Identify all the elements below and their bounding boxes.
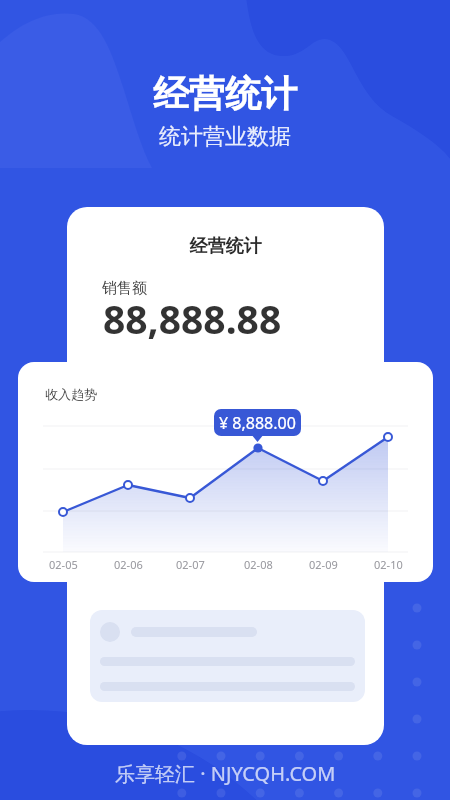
staticText: 02-08 (244, 557, 273, 572)
staticText: 02-10 (374, 557, 403, 572)
staticText: 88,888.88 (103, 292, 282, 345)
staticText: 经营统计 (67, 235, 384, 258)
staticText: 经营统计 (153, 71, 297, 116)
staticText: 统计营业数据 (159, 123, 291, 151)
staticText: 02-05 (49, 557, 78, 572)
staticText: 02-07 (176, 557, 205, 572)
staticText: 乐享轻汇 · NJYCQH.COM (115, 760, 336, 787)
staticText: 销售额 (102, 279, 147, 298)
staticText: ¥ 8,888.00 (219, 412, 296, 434)
staticText: 收入趋势 (45, 386, 97, 402)
staticText: 02-06 (114, 557, 143, 572)
staticText: 02-09 (309, 557, 338, 572)
